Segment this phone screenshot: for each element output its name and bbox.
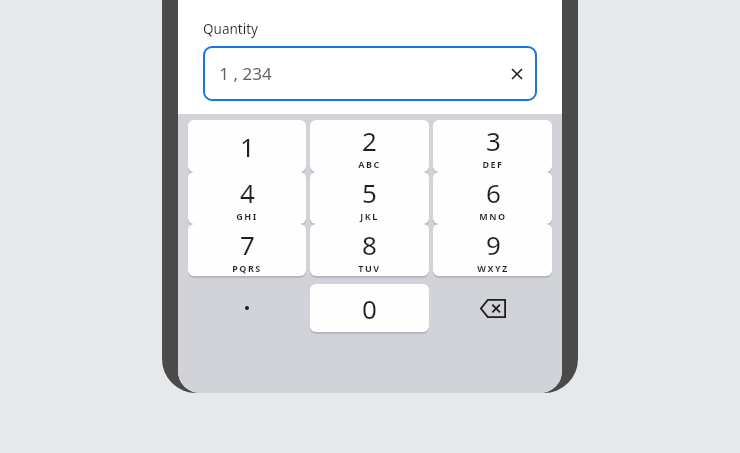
button[interactable]: 4 <box>186 172 308 224</box>
button[interactable]: 9 <box>431 224 554 276</box>
staticText: ABC <box>358 158 381 170</box>
button[interactable]: 6 <box>431 172 554 224</box>
staticText: 4 <box>240 175 255 210</box>
button[interactable]: Decimal point <box>186 284 308 332</box>
staticText: 1 , 234 <box>219 62 272 85</box>
staticText: 9 <box>486 227 501 262</box>
staticText: DEF <box>482 158 504 170</box>
staticText: TUV <box>358 262 381 274</box>
button[interactable]: 5 <box>308 172 431 224</box>
staticText: 2 <box>362 123 377 158</box>
button[interactable]: 2 <box>308 120 431 172</box>
staticText: JKL <box>360 210 379 222</box>
staticText: 3 <box>486 123 501 158</box>
staticText: WXYZ <box>477 262 509 274</box>
staticText: 0 <box>362 291 377 326</box>
button[interactable]: 7 <box>186 224 308 276</box>
button[interactable]: 1 , 234 <box>203 46 537 101</box>
staticText: GHI <box>236 210 258 222</box>
button[interactable]: 3 <box>431 120 554 172</box>
staticText: 5 <box>362 175 377 210</box>
button[interactable]: 0 <box>308 284 431 332</box>
staticText: Quantity <box>203 20 258 38</box>
button[interactable]: Backspace <box>431 284 554 332</box>
staticText: MNO <box>479 210 507 222</box>
staticText: PQRS <box>232 262 262 274</box>
button[interactable]: Clear text <box>499 56 535 92</box>
button[interactable]: 8 <box>308 224 431 276</box>
staticText: 7 <box>240 227 255 262</box>
staticText: 6 <box>486 175 501 210</box>
staticText: 1 <box>240 129 255 164</box>
staticText: 8 <box>362 227 377 262</box>
button[interactable]: 1 <box>186 120 308 172</box>
